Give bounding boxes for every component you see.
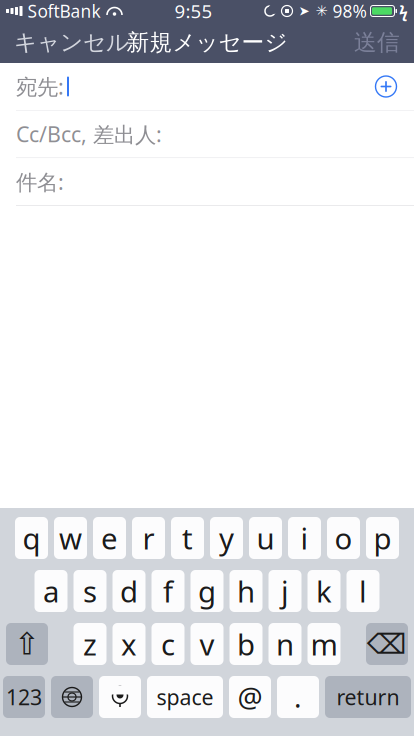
staticText: r <box>142 518 154 557</box>
button[interactable]: t <box>171 517 204 559</box>
button[interactable]: n <box>268 623 301 665</box>
staticText: SoftBank <box>27 0 100 22</box>
staticText: n <box>276 624 294 663</box>
button[interactable]: 件名: <box>0 158 414 205</box>
staticText: v <box>199 624 214 663</box>
staticText: z <box>83 624 97 663</box>
button[interactable]: d <box>112 570 145 612</box>
staticText: q <box>22 518 40 557</box>
staticText: . <box>294 678 302 716</box>
staticText: キャンセル <box>14 29 129 56</box>
button[interactable]: k <box>307 570 340 612</box>
button[interactable]: s <box>73 570 106 612</box>
button[interactable]: キャンセル <box>0 22 143 63</box>
staticText: ➤ <box>298 3 309 18</box>
staticText: o <box>334 518 352 557</box>
staticText: ✳ <box>315 3 327 19</box>
button[interactable]: q <box>15 517 48 559</box>
staticText: j <box>281 571 289 610</box>
staticText: space <box>156 683 213 711</box>
button[interactable]: h <box>229 570 262 612</box>
button[interactable]: y <box>210 517 243 559</box>
staticText: d <box>120 571 138 610</box>
button[interactable]: u <box>249 517 282 559</box>
staticText: 9:55 <box>174 0 212 23</box>
staticText: Cc/Bcc, 差出人: <box>16 120 162 148</box>
button[interactable]: i <box>288 517 321 559</box>
staticText: 件名: <box>16 167 64 196</box>
button[interactable]: 数字キーボード <box>3 676 45 718</box>
staticText: 新規メッセージ <box>126 29 287 56</box>
staticText: x <box>121 624 137 663</box>
button[interactable]: z <box>73 623 106 665</box>
staticText: ⌫ <box>367 628 407 660</box>
staticText: u <box>256 518 274 557</box>
staticText: 123 <box>6 683 42 711</box>
staticText: y <box>219 518 234 557</box>
button[interactable]: v <box>190 623 223 665</box>
staticText: m <box>310 624 337 663</box>
staticText: ⇧ <box>14 627 40 661</box>
button[interactable]: j <box>268 570 301 612</box>
staticText: 送信 <box>354 29 400 56</box>
button[interactable]: e <box>93 517 126 559</box>
button[interactable]: ピリオド <box>277 676 319 718</box>
staticText: f <box>163 571 173 610</box>
button[interactable]: 改行 <box>325 676 411 718</box>
button[interactable]: スペース <box>147 676 223 718</box>
staticText: a <box>43 571 59 610</box>
staticText: s <box>83 571 97 610</box>
button[interactable]: f <box>151 570 184 612</box>
staticText: b <box>237 624 255 663</box>
button[interactable]: c <box>151 623 184 665</box>
button[interactable]: b <box>229 623 262 665</box>
button[interactable]: a <box>34 570 67 612</box>
button[interactable]: l <box>346 570 379 612</box>
staticText: w <box>59 518 82 557</box>
button[interactable]: アットマーク <box>229 676 271 718</box>
button[interactable]: Delete <box>366 623 408 665</box>
staticText: g <box>198 571 216 610</box>
staticText: c <box>161 624 175 663</box>
button[interactable]: r <box>132 517 165 559</box>
staticText: p <box>373 518 391 557</box>
staticText: i <box>300 518 308 557</box>
button[interactable]: Cc/Bcc, 差出人: <box>0 111 414 158</box>
button[interactable]: 送信 <box>340 22 414 63</box>
button[interactable]: m <box>307 623 340 665</box>
button[interactable]: Shift <box>6 623 48 665</box>
button[interactable]: p <box>366 517 399 559</box>
button[interactable]: g <box>190 570 223 612</box>
staticText: return <box>336 683 399 711</box>
button[interactable]: 連絡先を追加 <box>364 64 408 108</box>
staticText: k <box>316 571 332 610</box>
staticText: ϟ <box>399 0 408 22</box>
button[interactable]: 宛先: <box>0 63 414 110</box>
staticText: 98% <box>332 0 366 22</box>
button[interactable]: 音声入力 <box>99 676 141 718</box>
staticText: t <box>182 518 193 557</box>
button[interactable]: 言語を切り替える <box>51 676 93 718</box>
staticText: h <box>237 571 255 610</box>
staticText: 宛先: <box>16 72 64 101</box>
button[interactable]: x <box>112 623 145 665</box>
button[interactable]: w <box>54 517 87 559</box>
staticText: e <box>101 518 118 557</box>
staticText: @ <box>237 678 262 716</box>
button[interactable]: o <box>327 517 360 559</box>
staticText: l <box>359 571 367 610</box>
